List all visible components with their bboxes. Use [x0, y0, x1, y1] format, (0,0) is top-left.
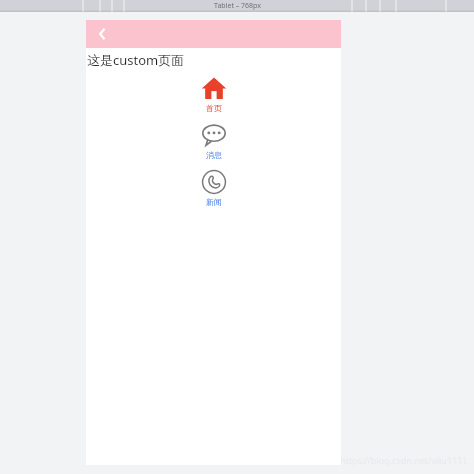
staticText: 首页	[206, 103, 222, 113]
staticText: Tablet – 768px	[214, 1, 261, 11]
button[interactable]: News	[182, 169, 246, 207]
staticText: 消息	[206, 150, 222, 160]
staticText: 这是custom页面	[87, 51, 185, 69]
staticText: https://blog.csdn.net/aliu1111	[340, 454, 468, 466]
button[interactable]: Back	[90, 23, 112, 45]
button[interactable]: Home	[182, 75, 246, 113]
staticText: 新闻	[206, 197, 222, 207]
button[interactable]: Messages	[182, 122, 246, 160]
